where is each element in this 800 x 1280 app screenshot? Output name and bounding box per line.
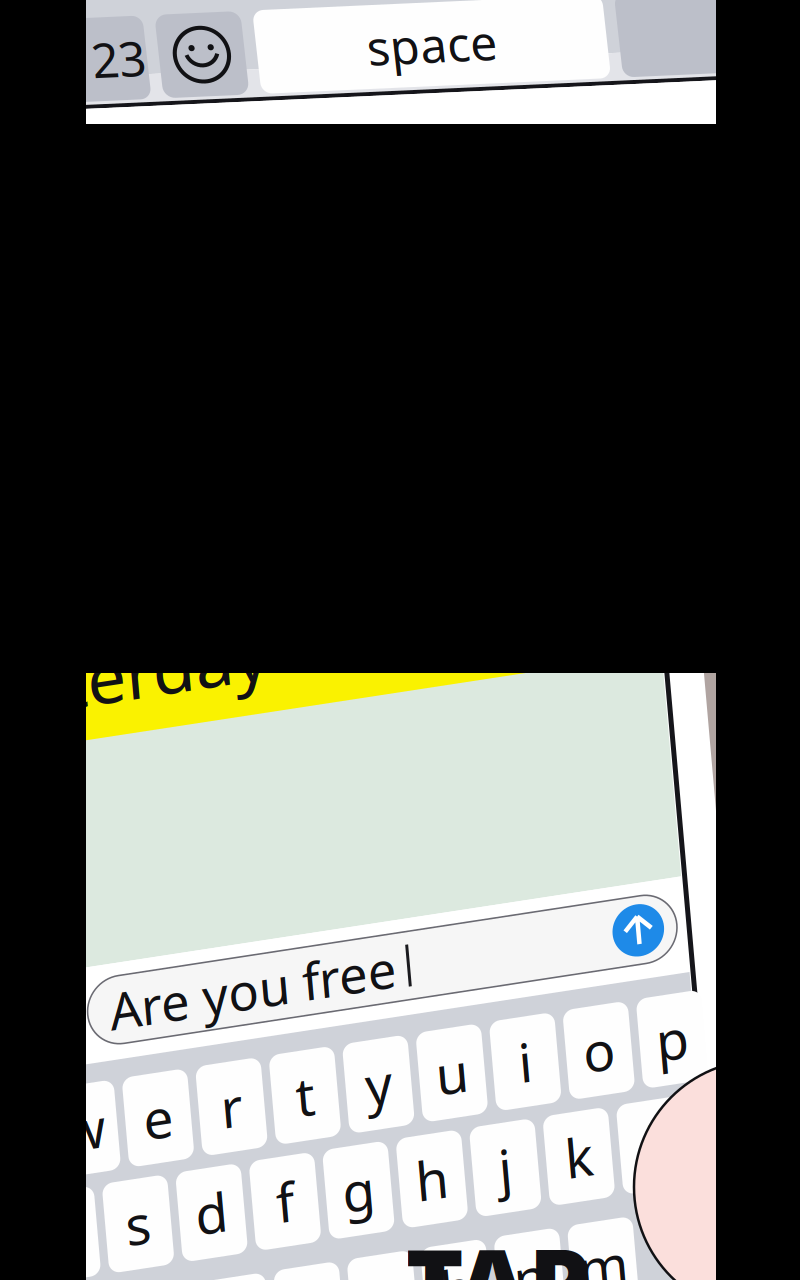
staticText: Yesterday [111, 886, 427, 978]
staticText: 123 [151, 21, 232, 85]
staticText: space [454, 21, 584, 85]
staticText: TAP [405, 1217, 590, 1280]
staticText: Are you free [238, 1230, 528, 1280]
